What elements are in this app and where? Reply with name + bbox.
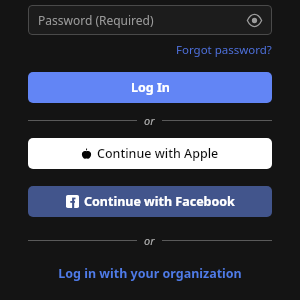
staticText: Password (Required)	[38, 12, 154, 28]
staticText: or	[144, 113, 155, 128]
staticText: Log In	[131, 79, 170, 96]
button[interactable]: Log In	[28, 72, 272, 103]
staticText: Continue with Facebook	[84, 193, 235, 210]
staticText: Forgot password?	[176, 42, 272, 58]
staticText: or	[144, 233, 155, 248]
button[interactable]: Log in with your organization	[58, 265, 242, 282]
staticText: Continue with Apple	[97, 145, 219, 162]
button[interactable]: Continue with Apple	[28, 138, 272, 169]
button[interactable]: Password (Required)	[28, 5, 272, 35]
button[interactable]: Forgot password?	[176, 42, 272, 58]
staticText: Log in with your organization	[58, 265, 242, 282]
button[interactable]: Show password	[244, 10, 264, 30]
button[interactable]: Continue with Facebook	[28, 186, 272, 217]
